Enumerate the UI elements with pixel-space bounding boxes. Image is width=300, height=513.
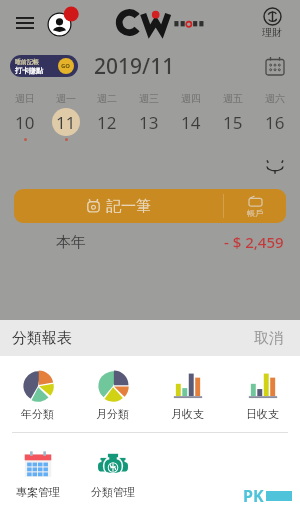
staticText: 專案管理	[16, 485, 60, 499]
staticText: 打卡賺點	[15, 66, 43, 75]
staticText: 理財	[262, 26, 282, 39]
staticText: 記一筆	[106, 197, 151, 216]
staticText: PK	[243, 485, 264, 507]
staticText: 14	[181, 111, 201, 134]
button[interactable]: 分類管理	[75, 433, 150, 513]
button[interactable]: 16	[254, 108, 296, 141]
button[interactable]: 12	[86, 108, 128, 141]
staticText: 15	[223, 111, 243, 134]
staticText: 2019/11	[94, 52, 175, 81]
button[interactable]: Account	[42, 4, 80, 42]
staticText: 年分類	[21, 407, 54, 421]
button[interactable]: 日收支	[225, 356, 300, 433]
staticText: 本年	[56, 233, 86, 252]
staticText: 週四	[181, 92, 201, 105]
staticText: 12	[97, 111, 117, 134]
staticText: - $ 2,459	[224, 232, 284, 252]
button[interactable]: 10	[4, 108, 45, 141]
staticText: 週日	[15, 92, 35, 105]
button[interactable]: 11	[45, 108, 86, 141]
staticText: 16	[265, 111, 285, 134]
staticText: 週六	[265, 92, 285, 105]
button[interactable]: 取消	[250, 325, 288, 352]
staticText: 取消	[254, 329, 284, 348]
staticText: 日收支	[246, 407, 279, 421]
staticText: GO	[61, 62, 71, 70]
staticText: 分類報表	[12, 329, 72, 348]
button[interactable]: 13	[128, 108, 170, 141]
button[interactable]: 睡前記帳	[10, 55, 78, 77]
button[interactable]: 15	[212, 108, 254, 141]
button[interactable]: 記一筆	[14, 189, 223, 223]
staticText: 週五	[223, 92, 243, 105]
button[interactable]: 理財	[252, 7, 292, 39]
staticText: 月分類	[96, 407, 129, 421]
staticText: 10	[15, 111, 35, 134]
staticText: 13	[139, 111, 159, 134]
staticText: 分類管理	[91, 485, 135, 499]
staticText: 週三	[139, 92, 159, 105]
button[interactable]: 月收支	[150, 356, 225, 433]
staticText: 11	[56, 111, 76, 134]
button[interactable]: 專案管理	[0, 433, 75, 513]
staticText: 帳戶	[247, 208, 263, 218]
button[interactable]: 年分類	[0, 356, 75, 433]
staticText: 週二	[97, 92, 117, 105]
staticText: 睡前記帳	[15, 58, 39, 66]
button[interactable]: 月分類	[75, 356, 150, 433]
staticText: 週一	[56, 92, 76, 105]
button[interactable]: Hide amount	[264, 155, 286, 177]
button[interactable]: Menu	[8, 6, 42, 40]
button[interactable]: Calendar	[260, 51, 290, 81]
staticText: 月收支	[171, 407, 204, 421]
button[interactable]: 14	[170, 108, 212, 141]
button[interactable]: 帳戶	[224, 189, 286, 223]
